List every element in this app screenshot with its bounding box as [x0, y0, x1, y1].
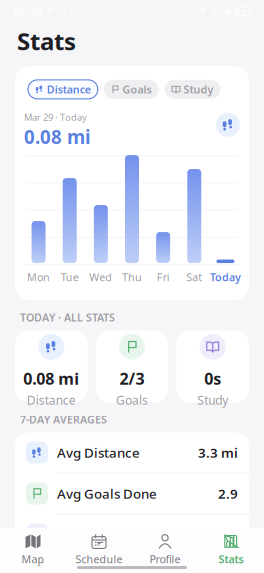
button[interactable]: Goals [104, 80, 159, 99]
staticText: 2/3 [119, 368, 144, 389]
staticText: 7-DAY AVERAGES [20, 412, 107, 427]
staticText: Goals [116, 392, 148, 408]
staticText: 0.08 mi [23, 368, 79, 389]
staticText: Avg Goals Done [57, 485, 157, 502]
staticText: Avg Distance [57, 444, 140, 461]
staticText: Tue [61, 270, 79, 284]
staticText: Goals [123, 82, 152, 96]
button[interactable]: Schedule [66, 534, 132, 566]
staticText: 3.3 mi [198, 444, 238, 461]
staticText: Stats [17, 25, 76, 57]
staticText: Study [197, 392, 228, 408]
staticText: Thu [122, 270, 142, 284]
button[interactable]: Avg Goals Done [15, 474, 249, 514]
button[interactable]: Stats [198, 534, 264, 566]
staticText: Today [210, 270, 241, 284]
staticText: Distance [27, 392, 76, 408]
staticText: Distance [47, 82, 91, 96]
staticText: 0.08 mi [24, 124, 91, 149]
staticText: Profile [149, 552, 180, 566]
staticText: Mar 29 · Today [24, 111, 87, 123]
button[interactable]: Map [0, 534, 66, 566]
staticText: Study [183, 82, 213, 96]
staticText: 2.9 [218, 485, 238, 502]
staticText: Avg Study [57, 526, 119, 543]
staticText: Schedule [75, 552, 122, 566]
button[interactable]: Study [165, 80, 220, 99]
staticText: Wed [89, 270, 112, 284]
staticText: 0s [223, 526, 238, 543]
button[interactable]: Avg Distance [15, 433, 249, 473]
button[interactable]: Avg Study [15, 515, 249, 555]
button[interactable]: Profile [132, 534, 198, 566]
staticText: Fri [157, 270, 170, 284]
staticText: Sat [186, 270, 202, 284]
staticText: TODAY · ALL STATS [20, 310, 115, 324]
staticText: Mon [27, 270, 50, 284]
staticText: 27 [238, 6, 248, 16]
staticText: 0s [204, 368, 221, 389]
staticText: Stats [218, 552, 243, 566]
button[interactable]: Distance [28, 80, 98, 99]
staticText: Map [21, 552, 44, 566]
